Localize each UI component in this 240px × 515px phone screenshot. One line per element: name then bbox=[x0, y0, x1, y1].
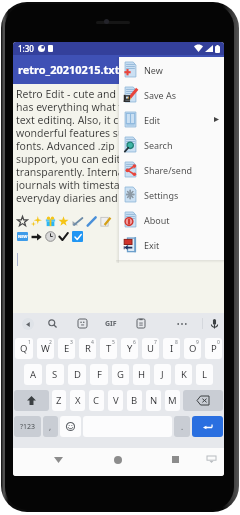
staticText: I bbox=[170, 342, 174, 355]
button[interactable]: New bbox=[119, 57, 224, 82]
button[interactable]: D bbox=[68, 364, 86, 385]
button[interactable]: I bbox=[163, 338, 180, 359]
staticText: T bbox=[106, 342, 112, 355]
staticText: wonderful features su bbox=[16, 126, 125, 139]
button[interactable]: R bbox=[79, 338, 96, 359]
staticText: 4 bbox=[91, 339, 94, 346]
button[interactable]: Save As bbox=[119, 82, 224, 107]
button[interactable]: O bbox=[184, 338, 201, 359]
button[interactable]: Share/send bbox=[119, 157, 224, 182]
button[interactable]: Exit bbox=[119, 232, 224, 257]
button[interactable]: W bbox=[37, 338, 54, 359]
staticText: Save As bbox=[144, 89, 177, 101]
button[interactable]: Z bbox=[52, 390, 66, 411]
staticText: R bbox=[85, 342, 91, 355]
staticText: A bbox=[30, 368, 37, 381]
button[interactable]: Home bbox=[107, 449, 128, 470]
button[interactable]: Backspace bbox=[183, 390, 223, 411]
staticText: Settings bbox=[144, 189, 179, 201]
staticText: support, you can edit bbox=[16, 152, 121, 165]
staticText: 3 bbox=[70, 339, 73, 346]
staticText: ?123 bbox=[20, 422, 36, 432]
button[interactable]: Recent apps bbox=[165, 449, 186, 470]
staticText: N bbox=[150, 394, 158, 407]
button[interactable]: J bbox=[154, 364, 171, 385]
button[interactable]: X bbox=[70, 390, 85, 411]
button[interactable]: P bbox=[205, 338, 222, 359]
button[interactable]: E bbox=[58, 338, 75, 359]
button[interactable]: M bbox=[165, 390, 180, 411]
staticText: Edit bbox=[144, 114, 161, 126]
staticText: U bbox=[147, 342, 154, 355]
button[interactable]: Search bbox=[44, 313, 60, 334]
button[interactable]: G bbox=[112, 364, 129, 385]
button[interactable]: Emoji bbox=[60, 416, 81, 437]
staticText: 0 bbox=[217, 339, 220, 346]
staticText: H bbox=[138, 368, 146, 381]
staticText: , bbox=[49, 421, 52, 432]
button[interactable]: C bbox=[89, 390, 104, 411]
button[interactable]: F bbox=[90, 364, 108, 385]
staticText: 2 bbox=[49, 339, 52, 346]
button[interactable]: GIF bbox=[103, 313, 119, 334]
button[interactable]: Clipboard bbox=[133, 313, 149, 334]
button[interactable]: L bbox=[196, 364, 213, 385]
button[interactable]: S bbox=[46, 364, 64, 385]
button[interactable]: Enter bbox=[192, 416, 223, 437]
button[interactable]: . bbox=[174, 416, 190, 437]
button[interactable]: Edit bbox=[119, 107, 224, 132]
button[interactable]: V bbox=[108, 390, 123, 411]
button[interactable]: Stickers bbox=[74, 313, 90, 334]
staticText: 6 bbox=[133, 339, 136, 346]
button[interactable]: U bbox=[142, 338, 159, 359]
staticText: 7 bbox=[154, 339, 157, 346]
staticText: journals with timestan bbox=[16, 178, 127, 191]
button[interactable]: T bbox=[100, 338, 117, 359]
button[interactable]: Y bbox=[121, 338, 138, 359]
staticText: P bbox=[211, 342, 217, 355]
staticText: V bbox=[113, 394, 119, 407]
button[interactable]: Voice input bbox=[206, 313, 222, 334]
button[interactable]: H bbox=[133, 364, 150, 385]
staticText: NEW bbox=[18, 234, 28, 239]
button[interactable]: , bbox=[43, 416, 58, 437]
button[interactable]: ?123 bbox=[14, 416, 41, 437]
button[interactable]: K bbox=[175, 364, 192, 385]
staticText: L bbox=[202, 368, 207, 381]
button[interactable]: B bbox=[127, 390, 142, 411]
staticText: 9 bbox=[196, 339, 199, 346]
button[interactable]: More options bbox=[174, 313, 190, 334]
staticText: E bbox=[64, 342, 70, 355]
button[interactable]: Q bbox=[15, 338, 33, 359]
staticText: F bbox=[97, 368, 102, 381]
button[interactable]: N bbox=[146, 390, 161, 411]
staticText: New bbox=[144, 64, 163, 76]
button[interactable]: Back bbox=[48, 449, 69, 470]
staticText: transparently. Interna bbox=[16, 165, 124, 178]
staticText: fonts. Advanced .zip bbox=[16, 139, 115, 152]
staticText: O bbox=[189, 342, 197, 355]
button[interactable]: Settings bbox=[119, 182, 224, 207]
staticText: D bbox=[74, 368, 81, 381]
staticText: J bbox=[161, 368, 164, 381]
staticText: text editing. Also, it c bbox=[16, 113, 119, 126]
staticText: C bbox=[93, 394, 100, 407]
staticText: 1 bbox=[28, 339, 31, 346]
button[interactable]: Hide keyboard bbox=[201, 449, 221, 469]
staticText: 5 bbox=[112, 339, 115, 346]
staticText: M bbox=[168, 394, 177, 407]
staticText: Y bbox=[127, 342, 133, 355]
staticText: 1:30 bbox=[18, 43, 34, 54]
staticText: About bbox=[144, 214, 170, 226]
staticText: B bbox=[131, 394, 138, 407]
staticText: X bbox=[75, 394, 81, 407]
staticText: Exit bbox=[144, 239, 160, 251]
button[interactable]: A bbox=[24, 364, 42, 385]
staticText: . bbox=[181, 421, 184, 432]
button[interactable]: Back bbox=[20, 313, 36, 334]
button[interactable]: Search bbox=[119, 132, 224, 157]
staticText: W bbox=[41, 342, 50, 355]
button[interactable]: About bbox=[119, 207, 224, 232]
button[interactable]: Shift bbox=[14, 390, 49, 411]
